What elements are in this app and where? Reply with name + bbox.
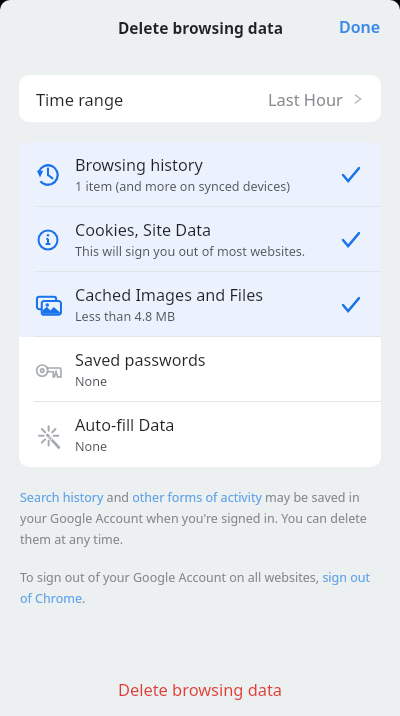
staticText: None: [75, 438, 108, 455]
staticText: 1 item (and more on synced devices): [75, 178, 291, 195]
button[interactable]: Browsing history: [19, 142, 381, 207]
button[interactable]: Delete browsing data: [0, 668, 400, 710]
staticText: Browsing history: [75, 154, 203, 176]
staticText: Cookies, Site Data: [75, 219, 212, 241]
button[interactable]: Auto-fill Data: [19, 402, 381, 467]
staticText: Cached Images and Files: [75, 284, 264, 306]
staticText: Delete browsing data: [118, 678, 283, 700]
button[interactable]: Saved passwords: [19, 337, 381, 402]
button[interactable]: Cookies, Site Data: [19, 207, 381, 272]
staticText: This will sign you out of most websites.: [75, 243, 306, 260]
button[interactable]: Cached Images and Files: [19, 272, 381, 337]
button[interactable]: Done: [320, 6, 400, 48]
staticText: None: [75, 373, 108, 390]
staticText: Delete browsing data: [118, 17, 283, 38]
staticText: Less than 4.8 MB: [75, 308, 176, 325]
staticText: Auto-fill Data: [75, 414, 175, 436]
staticText: Done: [339, 16, 381, 38]
button[interactable]: Time range: [19, 75, 381, 122]
staticText: Time range: [36, 88, 124, 110]
staticText: Saved passwords: [75, 349, 206, 371]
staticText: To sign out of your Google Account on al…: [20, 569, 380, 607]
staticText: Search history and other forms of activi…: [20, 489, 380, 548]
staticText: Last Hour: [268, 88, 343, 110]
